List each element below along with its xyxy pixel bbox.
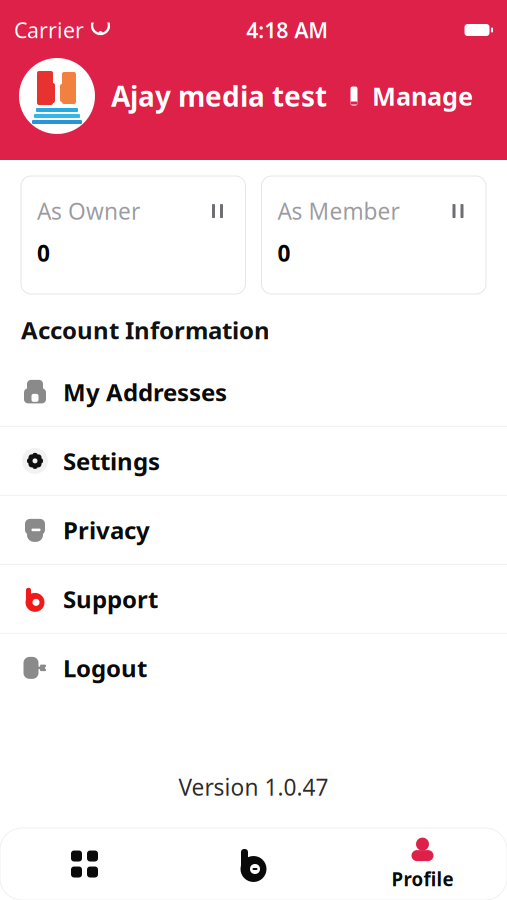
button[interactable]: Dashboard xyxy=(0,829,169,899)
button[interactable]: My Addresses xyxy=(0,358,507,426)
staticText: Support xyxy=(63,583,158,615)
staticText: Settings xyxy=(63,445,160,477)
staticText: As Member xyxy=(277,196,399,226)
staticText: As Owner xyxy=(37,196,140,226)
staticText: Profile xyxy=(391,867,453,891)
staticText: Carrier xyxy=(14,16,84,44)
button[interactable]: Home xyxy=(169,829,338,899)
button[interactable]: Manage xyxy=(334,71,483,121)
staticText: 4:18 AM xyxy=(246,16,328,44)
staticText: Account Information xyxy=(21,314,270,346)
staticText: Manage xyxy=(372,79,473,113)
button[interactable]: Privacy xyxy=(0,496,507,564)
staticText: Logout xyxy=(63,652,147,684)
button[interactable]: Profile xyxy=(338,829,507,899)
button[interactable]: Support xyxy=(0,565,507,633)
staticText: 0 xyxy=(277,238,290,268)
staticText: My Addresses xyxy=(63,376,227,408)
staticText: Ajay media test xyxy=(111,77,327,115)
button[interactable]: As Member xyxy=(261,176,486,294)
staticText: 0 xyxy=(37,238,50,268)
staticText: Privacy xyxy=(63,514,150,546)
button[interactable]: Settings xyxy=(0,427,507,495)
button[interactable]: Logout xyxy=(0,634,507,702)
staticText: Version 1.0.47 xyxy=(178,772,328,802)
button[interactable]: As Owner xyxy=(21,176,245,294)
